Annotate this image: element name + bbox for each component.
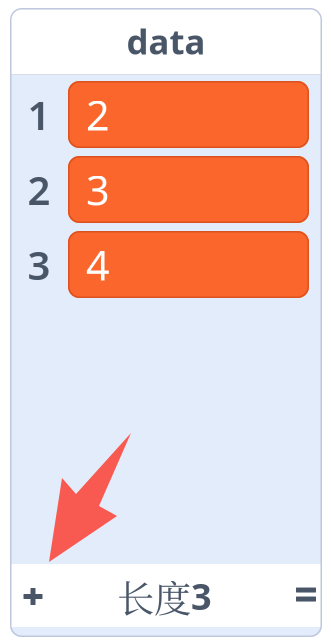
button[interactable]: Equals [273, 564, 322, 627]
button[interactable]: 3 [68, 156, 322, 223]
button[interactable]: 4 [68, 231, 322, 298]
staticText: 4 [86, 237, 110, 292]
staticText: data [126, 18, 205, 64]
staticText: 长度3 [117, 570, 212, 623]
staticText: 3 [27, 238, 50, 291]
button[interactable]: 2 [68, 81, 322, 148]
staticText: 2 [27, 163, 50, 216]
staticText: 1 [27, 88, 50, 141]
staticText: 2 [86, 87, 110, 142]
staticText: 3 [86, 162, 110, 217]
button[interactable]: Add element [10, 564, 56, 627]
